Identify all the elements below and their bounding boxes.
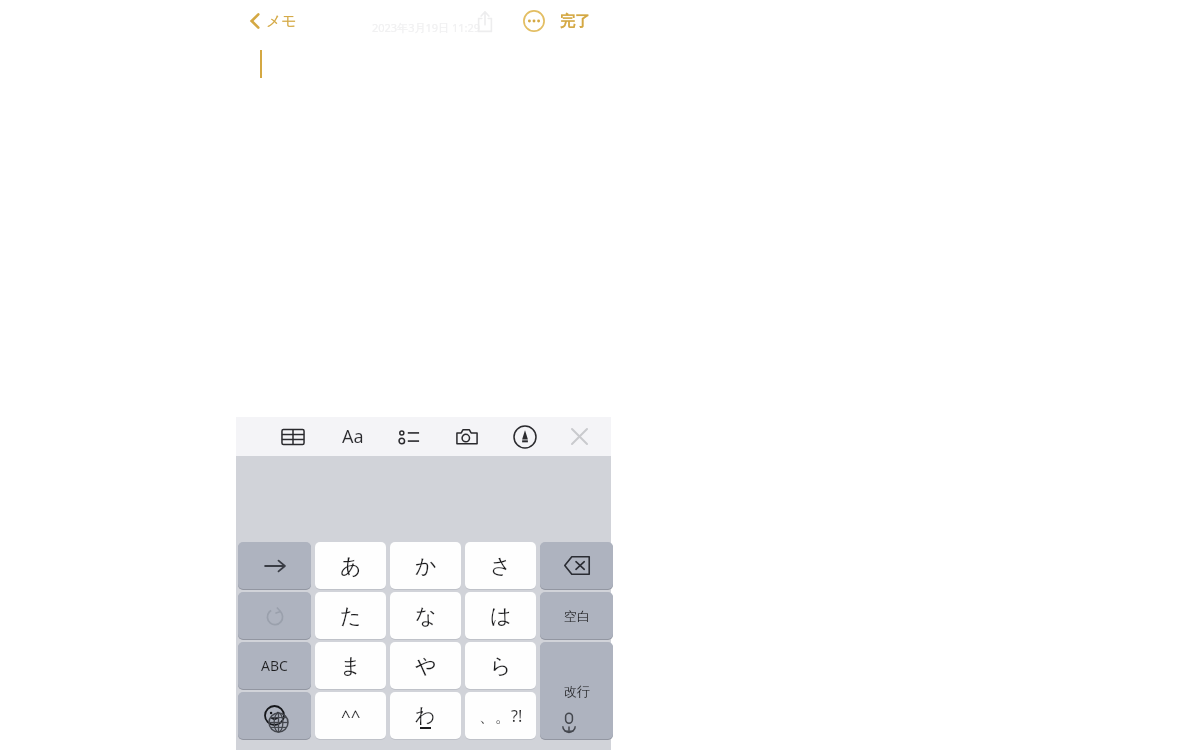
- staticText: Aa: [342, 424, 364, 449]
- staticText: ま: [340, 653, 362, 679]
- button[interactable]: Checklist: [388, 417, 430, 456]
- button[interactable]: Delete: [540, 542, 613, 589]
- button[interactable]: 空白: [540, 592, 613, 639]
- button[interactable]: ら: [465, 642, 536, 689]
- button[interactable]: 完了: [554, 4, 596, 38]
- staticText: ら: [490, 653, 512, 679]
- staticText: や: [415, 653, 437, 679]
- button[interactable]: Share: [468, 4, 502, 38]
- button[interactable]: メモ: [244, 6, 301, 36]
- button[interactable]: ABC: [238, 642, 311, 689]
- staticText: 2023年3月19日 11:29: [346, 20, 506, 35]
- button[interactable]: Close: [558, 417, 600, 456]
- button[interactable]: さ: [465, 542, 536, 589]
- button[interactable]: か: [390, 542, 461, 589]
- button[interactable]: More: [517, 4, 551, 38]
- button[interactable]: 、。?!: [465, 692, 536, 739]
- button[interactable]: 改行: [540, 642, 613, 739]
- button[interactable]: Dictate: [551, 704, 587, 740]
- staticText: た: [340, 603, 362, 629]
- button[interactable]: Markup: [504, 417, 546, 456]
- staticText: 、。?!: [479, 705, 523, 727]
- button[interactable]: は: [465, 592, 536, 639]
- button[interactable]: Format: [332, 417, 374, 456]
- button[interactable]: ま: [315, 642, 386, 689]
- button[interactable]: Table: [272, 417, 314, 456]
- button[interactable]: Next: [238, 542, 311, 589]
- staticText: 完了: [560, 12, 590, 31]
- button[interactable]: Undo: [238, 592, 311, 639]
- staticText: 空白: [564, 608, 590, 624]
- button[interactable]: わ: [390, 692, 461, 739]
- staticText: ^^: [341, 704, 361, 727]
- button[interactable]: あ: [315, 542, 386, 589]
- button[interactable]: Camera: [446, 417, 488, 456]
- staticText: は: [490, 603, 512, 629]
- button[interactable]: た: [315, 592, 386, 639]
- staticText: あ: [340, 553, 362, 579]
- staticText: さ: [490, 553, 512, 579]
- staticText: 改行: [564, 683, 590, 699]
- staticText: な: [415, 603, 437, 629]
- button[interactable]: や: [390, 642, 461, 689]
- button[interactable]: Emoji: [238, 692, 311, 739]
- staticText: ABC: [261, 656, 288, 675]
- staticText: わ: [415, 703, 436, 728]
- button[interactable]: ^^: [315, 692, 386, 739]
- staticText: か: [415, 553, 437, 579]
- button[interactable]: な: [390, 592, 461, 639]
- staticText: メモ: [266, 12, 297, 31]
- button[interactable]: Change keyboard: [260, 704, 296, 740]
